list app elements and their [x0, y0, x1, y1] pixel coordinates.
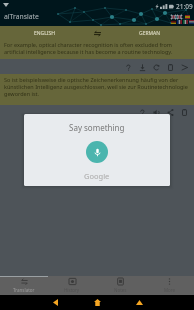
staticText: For example, optical character recogniti… — [4, 41, 190, 55]
staticText: Google — [84, 171, 110, 181]
button[interactable]: ENGLISH — [0, 26, 89, 40]
button[interactable]: Speak — [149, 105, 163, 119]
staticText: GERMAN — [139, 30, 161, 37]
staticText: Translator — [13, 287, 35, 293]
button[interactable]: Copy — [163, 60, 177, 74]
button[interactable]: Microphone — [86, 141, 108, 163]
button[interactable]: Send — [177, 60, 191, 74]
button[interactable]: Back — [34, 295, 76, 310]
button[interactable]: Copy — [177, 105, 191, 119]
staticText: aiTranslate — [4, 12, 39, 21]
staticText: History — [64, 287, 80, 293]
staticText: 21:09 — [176, 2, 193, 11]
button[interactable]: History — [48, 276, 96, 295]
staticText: More — [164, 287, 176, 293]
button[interactable]: Translator — [0, 276, 48, 295]
button[interactable]: GERMAN — [105, 26, 194, 40]
button[interactable]: Help — [121, 60, 135, 74]
button[interactable]: Download — [135, 60, 149, 74]
button[interactable]: Recents — [118, 295, 160, 310]
button[interactable]: Swap languages — [89, 26, 105, 40]
button[interactable]: Notes — [96, 276, 145, 295]
staticText: ENGLISH — [34, 30, 55, 37]
button[interactable]: Home — [76, 295, 118, 310]
button[interactable]: Refresh — [149, 60, 163, 74]
staticText: Notes — [114, 287, 127, 293]
staticText: So ist beispielsweise die optische Zeich… — [4, 76, 190, 97]
button[interactable]: Share — [163, 105, 177, 119]
button[interactable]: Help — [135, 105, 149, 119]
staticText: Say something — [69, 122, 125, 133]
